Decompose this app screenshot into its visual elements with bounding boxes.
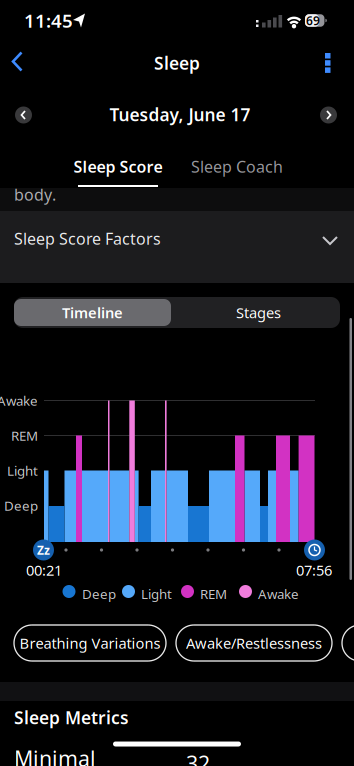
staticText: Timeline [62,303,123,322]
staticText: Minimal [14,744,96,766]
staticText: Sleep Score [73,156,162,177]
staticText: 07:56 [296,560,332,580]
staticText: Sleep Coach [191,156,283,177]
staticText: Deep [4,497,38,514]
staticText: 11:45 [24,8,73,33]
button[interactable]: Next day [320,106,337,123]
button[interactable]: Previous day [15,106,32,123]
staticText: Stages [236,303,281,322]
button[interactable]: Stages [180,299,337,326]
staticText: body. [14,184,56,205]
staticText: Breathing Variations [19,633,160,653]
staticText: Tuesday, June 17 [109,103,250,126]
staticText: REM [11,427,38,444]
staticText: Zz [37,542,50,558]
button[interactable]: More options [0,0,30,34]
staticText: Sleep Metrics [14,706,129,729]
staticText: Light [141,585,172,603]
staticText: Awake/Restlessness [186,633,322,653]
staticText: 32 [186,749,210,766]
button[interactable]: Timeline [14,299,171,326]
staticText: Awake [258,585,299,603]
staticText: Sleep Score Factors [14,228,161,249]
staticText: Sleep [154,51,200,74]
button[interactable]: Sleep Coach [177,151,296,181]
staticText: Awake [0,392,38,409]
button[interactable]: More charts [342,625,354,661]
staticText: 69 [306,12,320,28]
button[interactable]: Breathing Variations [14,625,166,661]
button[interactable]: Sleep Score [58,151,177,181]
button[interactable]: Sleep Score Factors [0,211,354,283]
staticText: Deep [82,585,116,603]
button[interactable]: Back [0,0,34,34]
button[interactable]: Awake/Restlessness [176,625,332,661]
staticText: Light [7,462,38,479]
staticText: REM [200,585,227,603]
staticText: 00:21 [26,560,62,580]
